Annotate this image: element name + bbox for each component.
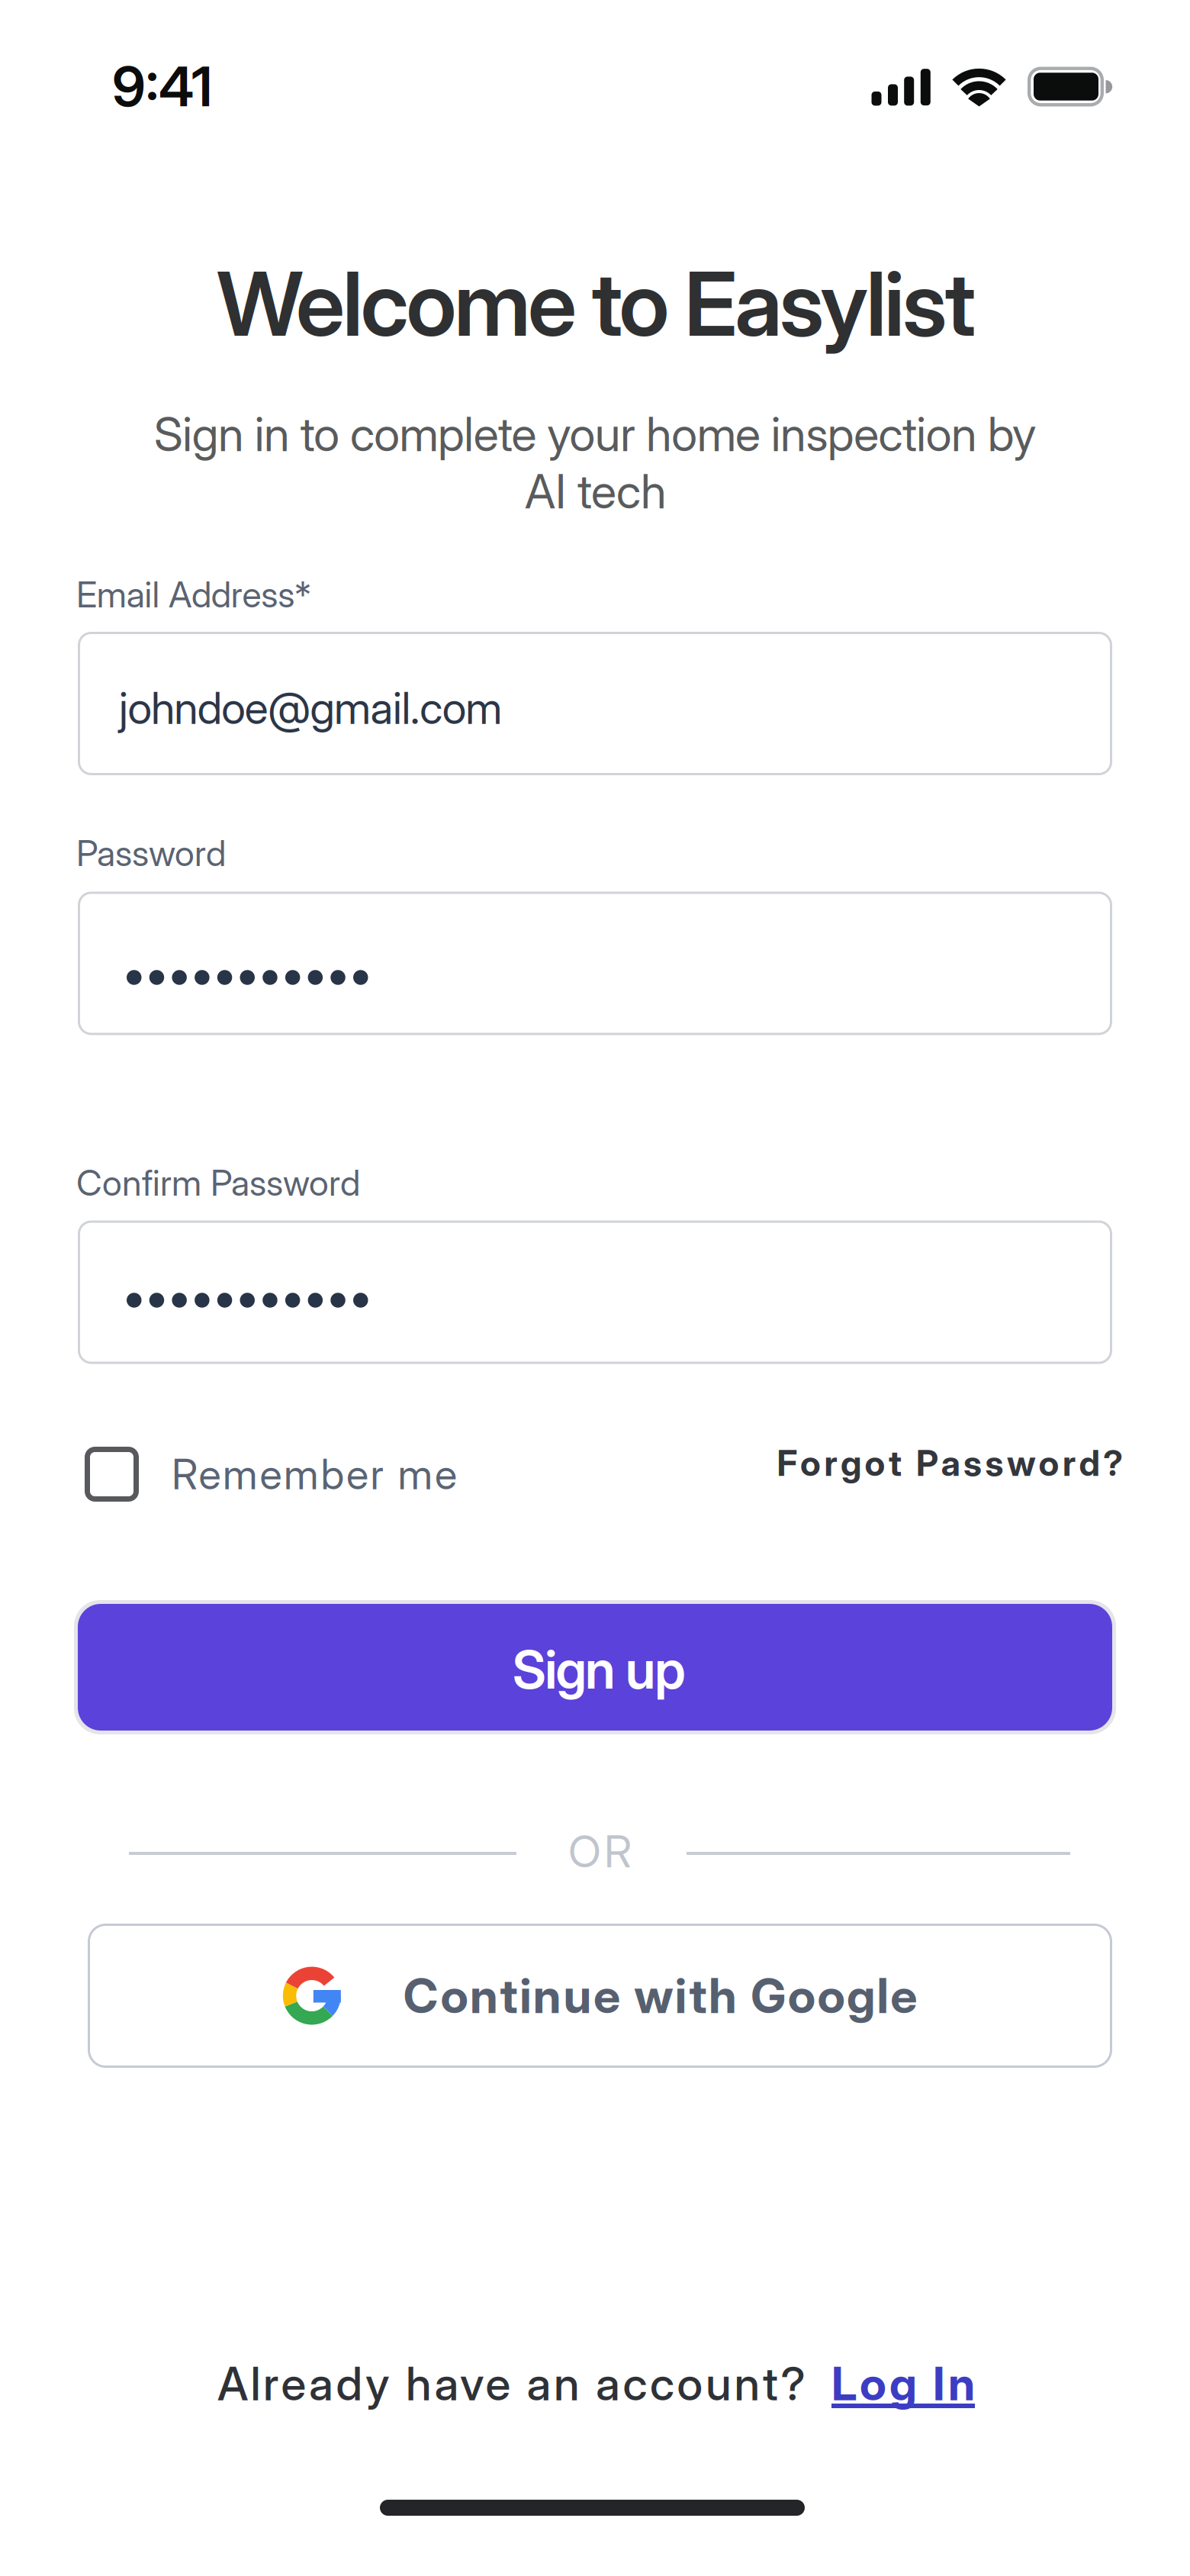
staticText: 9:41	[112, 53, 212, 119]
button[interactable]: Sign up	[74, 1600, 1116, 1734]
staticText: Forgot Password?	[777, 1442, 1123, 1484]
staticText: Password	[76, 832, 226, 875]
staticText: Continue with Google	[403, 1967, 917, 2025]
staticText: Welcome to Easylist	[217, 250, 975, 357]
button[interactable]: Continue with Google	[88, 1924, 1112, 2068]
staticText: OR	[568, 1825, 632, 1878]
staticText: Sign in to complete your home inspection…	[154, 406, 1036, 462]
staticText: Sign up	[512, 1638, 685, 1701]
staticText: AI tech	[525, 463, 667, 520]
staticText: johndoe@gmail.com	[119, 682, 502, 735]
staticText: Already have an account?	[217, 2356, 805, 2411]
staticText: Email Address*	[76, 573, 311, 616]
button[interactable]: Remember me	[85, 1447, 457, 1502]
button[interactable]: Log In	[831, 2356, 1045, 2411]
staticText: Remember me	[172, 1449, 457, 1499]
staticText: Confirm Password	[76, 1161, 360, 1204]
button[interactable]: Forgot Password?	[777, 1442, 1123, 1484]
staticText: Log In	[831, 2356, 975, 2411]
